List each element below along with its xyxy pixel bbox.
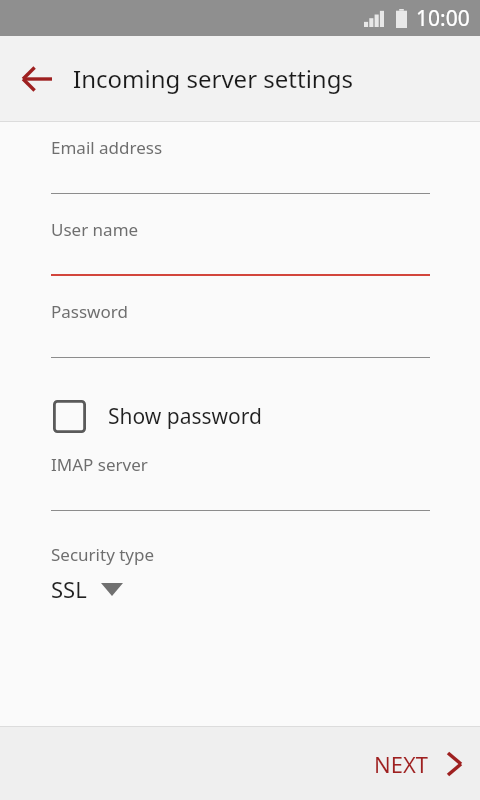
- staticText: Security type: [51, 543, 155, 566]
- button[interactable]: Security type: [0, 543, 480, 604]
- staticText: Show password: [108, 402, 262, 431]
- staticText: Email address: [51, 136, 163, 159]
- staticText: Incoming server settings: [73, 62, 353, 95]
- staticText: SSL: [51, 574, 87, 604]
- button[interactable]: Back: [8, 50, 66, 108]
- staticText: 10:00: [416, 4, 470, 33]
- staticText: IMAP server: [51, 453, 148, 476]
- staticText: NEXT: [374, 749, 429, 779]
- button[interactable]: Password: [0, 300, 480, 382]
- button[interactable]: User name: [0, 218, 480, 300]
- staticText: User name: [51, 218, 139, 241]
- button[interactable]: Email address: [0, 136, 480, 218]
- button[interactable]: Show password: [0, 396, 480, 437]
- staticText: Password: [51, 300, 128, 323]
- button[interactable]: IMAP server: [0, 453, 480, 535]
- button[interactable]: NEXT: [352, 737, 480, 791]
